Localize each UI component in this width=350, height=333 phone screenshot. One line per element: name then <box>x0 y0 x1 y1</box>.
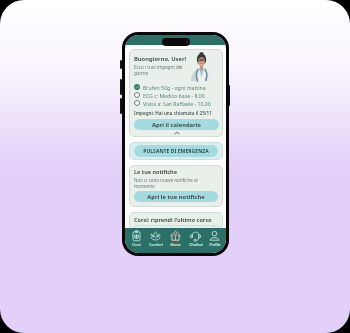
staticText: Brufen 50g - ogni mattina <box>143 84 206 91</box>
button[interactable]: Profilo <box>205 230 224 247</box>
button[interactable]: Visita a: San Raffaele - 10.00 <box>134 99 219 107</box>
staticText: Impegni: Hai una chiamata il 25/11 <box>134 110 212 116</box>
staticText: Home <box>170 242 181 247</box>
staticText: Chatbot <box>189 242 203 247</box>
button[interactable]: Brufen 50g - ogni mattina <box>134 83 219 91</box>
staticText: ECG c: Medico base - 8.00 <box>143 92 205 99</box>
button[interactable]: Home <box>166 230 185 247</box>
button[interactable]: PULSANTE DI EMERGENZA <box>134 145 218 157</box>
button[interactable]: Corsi <box>127 230 146 247</box>
staticText: Ecco i tuoi impegni del giorno <box>134 64 189 76</box>
staticText: Le tue notifiche <box>134 168 177 175</box>
staticText: Buongiorno, User! <box>134 55 187 63</box>
staticText: Apri il calendario <box>152 121 201 129</box>
staticText: Corsi <box>132 242 141 247</box>
button[interactable]: Apri le tue notifiche <box>134 191 218 202</box>
button[interactable]: Comfort <box>146 230 165 247</box>
staticText: Comfort <box>149 242 163 247</box>
staticText: PULSANTE DI EMERGENZA <box>143 148 209 155</box>
staticText: Corsi: riprendi l'ultimo corso <box>134 216 212 223</box>
button[interactable]: Apri il calendario <box>134 119 219 130</box>
staticText: Apri le tue notifiche <box>147 193 205 201</box>
button[interactable]: Chatbot <box>186 230 205 247</box>
button[interactable]: ECG c: Medico base - 8.00 <box>134 91 219 99</box>
staticText: Visita a: San Raffaele - 10.00 <box>143 100 211 107</box>
staticText: Non ci sono nuove notifiche al momento <box>134 177 218 189</box>
staticText: Profilo <box>209 242 221 247</box>
